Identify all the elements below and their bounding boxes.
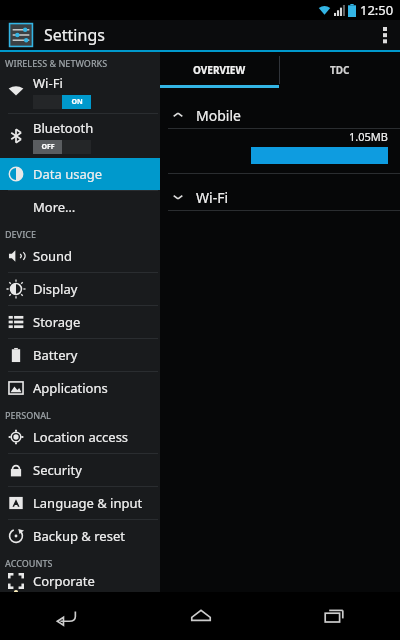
button[interactable]: Settings app icon bbox=[8, 22, 34, 48]
staticText: Storage bbox=[33, 313, 81, 331]
button[interactable]: Toggle on bbox=[33, 95, 91, 109]
button[interactable]: Display bbox=[0, 273, 160, 305]
button[interactable]: Mobile bbox=[160, 102, 400, 128]
staticText: Sound bbox=[33, 247, 73, 265]
button[interactable]: Home bbox=[134, 592, 267, 640]
button[interactable]: Sound bbox=[0, 240, 160, 272]
button[interactable]: OVERVIEW bbox=[160, 52, 279, 88]
button[interactable]: Recent apps bbox=[267, 592, 400, 640]
staticText: Settings bbox=[44, 24, 105, 46]
button[interactable]: Wi-Fi bbox=[0, 69, 160, 113]
staticText: Battery bbox=[33, 346, 78, 364]
staticText: Wi-Fi bbox=[196, 188, 229, 207]
staticText: More… bbox=[33, 198, 76, 216]
button[interactable]: Language & input bbox=[0, 487, 160, 519]
staticText: OFF bbox=[41, 142, 55, 152]
staticText: ON bbox=[71, 97, 83, 107]
button[interactable]: Back bbox=[0, 592, 134, 640]
staticText: Bluetooth bbox=[33, 119, 94, 137]
staticText: Data usage bbox=[33, 165, 103, 183]
staticText: Display bbox=[33, 280, 78, 298]
button[interactable]: Toggle off bbox=[33, 140, 91, 154]
button[interactable]: Data usage bbox=[0, 158, 160, 190]
staticText: Security bbox=[33, 461, 82, 479]
button[interactable]: More options bbox=[370, 20, 400, 50]
button[interactable]: Applications bbox=[0, 372, 160, 404]
staticText: Location access bbox=[33, 428, 129, 446]
button[interactable]: Backup & reset bbox=[0, 520, 160, 552]
staticText: 1.05MB bbox=[349, 129, 388, 144]
button[interactable]: Bluetooth bbox=[0, 114, 160, 158]
staticText: Backup & reset bbox=[33, 527, 125, 545]
staticText: Mobile bbox=[196, 106, 241, 125]
staticText: 12:50 bbox=[360, 1, 394, 19]
staticText: WIRELESS & NETWORKS bbox=[5, 57, 108, 69]
staticText: TDC bbox=[330, 63, 350, 77]
staticText: PERSONAL bbox=[5, 409, 51, 421]
button[interactable]: More… bbox=[0, 191, 160, 223]
button[interactable]: Location access bbox=[0, 421, 160, 453]
staticText: Corporate bbox=[33, 572, 95, 590]
button[interactable]: Security bbox=[0, 454, 160, 486]
staticText: DEVICE bbox=[5, 228, 37, 240]
button[interactable]: Storage bbox=[0, 306, 160, 338]
staticText: ACCOUNTS bbox=[5, 557, 53, 569]
button[interactable]: Battery bbox=[0, 339, 160, 371]
button[interactable]: Wi-Fi bbox=[160, 184, 400, 210]
button[interactable]: Corporate bbox=[0, 569, 160, 592]
button[interactable]: TDC bbox=[280, 52, 400, 88]
staticText: Applications bbox=[33, 379, 108, 397]
staticText: Language & input bbox=[33, 494, 143, 512]
staticText: OVERVIEW bbox=[193, 63, 246, 77]
staticText: Wi-Fi bbox=[33, 74, 63, 92]
